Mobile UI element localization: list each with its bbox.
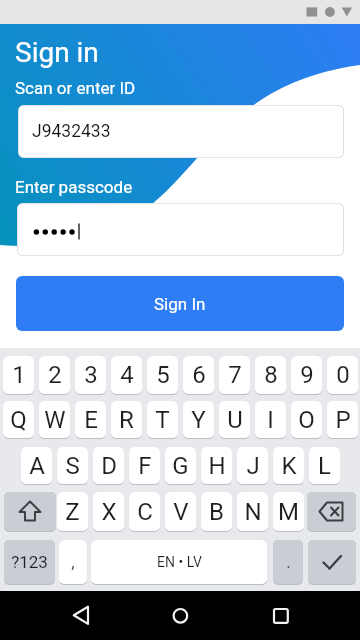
staticText: W (44, 406, 66, 434)
staticText: H (208, 452, 226, 480)
button[interactable]: M (273, 492, 304, 531)
button[interactable]: J9432433 (18, 105, 344, 158)
staticText: S (65, 452, 80, 480)
staticText: Y (191, 406, 206, 434)
staticText: P (335, 406, 351, 434)
button[interactable]: I (255, 401, 286, 438)
button[interactable]: Recents (251, 591, 311, 640)
staticText: I (267, 406, 274, 434)
staticText: C (137, 498, 153, 526)
button[interactable]: 7 (219, 356, 250, 394)
staticText: Enter passcode (15, 177, 133, 197)
button[interactable]: H (201, 447, 232, 484)
button[interactable]: Z (57, 492, 88, 531)
staticText: M (278, 498, 299, 526)
staticText: 2 (48, 361, 62, 389)
staticText: 1 (12, 361, 26, 389)
staticText: , (71, 552, 75, 572)
button[interactable]: Y (183, 401, 214, 438)
button[interactable]: 1 (3, 356, 34, 394)
button[interactable]: P (327, 401, 358, 438)
staticText: N (244, 498, 262, 526)
button[interactable]: G (165, 447, 196, 484)
button[interactable]: ?123 (4, 540, 55, 584)
staticText: F (138, 452, 152, 480)
button[interactable]: E (75, 401, 106, 438)
staticText: J9432433 (32, 121, 111, 142)
button[interactable]: 6 (183, 356, 214, 394)
button[interactable]: B (201, 492, 232, 531)
button[interactable]: 9 (291, 356, 322, 394)
staticText: 4 (120, 361, 134, 389)
staticText: 0 (336, 361, 350, 389)
staticText: Sign In (154, 294, 206, 314)
staticText: Scan or enter ID (15, 78, 136, 98)
staticText: D (101, 452, 117, 480)
staticText: 7 (228, 361, 242, 389)
staticText: 6 (192, 361, 206, 389)
staticText: R (119, 406, 134, 434)
button[interactable]: , (59, 540, 87, 584)
button[interactable]: K (273, 447, 304, 484)
button[interactable]: Home (150, 591, 210, 640)
button[interactable]: 5 (147, 356, 178, 394)
button[interactable]: J (237, 447, 268, 484)
staticText: Z (65, 498, 80, 526)
staticText: EN • LV (157, 554, 202, 570)
staticText: L (318, 452, 331, 480)
staticText: 5 (156, 361, 170, 389)
button[interactable]: 2 (39, 356, 70, 394)
button[interactable]: Back (60, 591, 120, 640)
staticText: O (298, 406, 315, 434)
button[interactable]: V (165, 492, 196, 531)
button[interactable]: 4 (111, 356, 142, 394)
button[interactable]: L (309, 447, 340, 484)
staticText: U (227, 406, 243, 434)
button[interactable]: T (147, 401, 178, 438)
button[interactable]: R (111, 401, 142, 438)
button[interactable]: W (39, 401, 70, 438)
button[interactable]: Sign In (16, 276, 344, 331)
staticText: A (29, 452, 45, 480)
button[interactable]: Q (3, 401, 34, 438)
button[interactable]: S (57, 447, 88, 484)
button[interactable] (17, 203, 344, 256)
button[interactable]: O (291, 401, 322, 438)
staticText: X (101, 498, 117, 526)
button[interactable]: D (93, 447, 124, 484)
staticText: Q (10, 406, 27, 434)
staticText: ?123 (11, 552, 48, 572)
staticText: 8 (264, 361, 278, 389)
staticText: V (173, 498, 189, 526)
button[interactable]: 8 (255, 356, 286, 394)
button[interactable]: X (93, 492, 124, 531)
staticText: G (172, 452, 189, 480)
button[interactable]: 3 (75, 356, 106, 394)
staticText: 9 (300, 361, 314, 389)
staticText: . (286, 552, 291, 572)
staticText: J (246, 452, 260, 480)
button[interactable]: Shift (4, 492, 56, 531)
button[interactable]: Enter (308, 540, 356, 584)
button[interactable]: F (129, 447, 160, 484)
staticText: Sign in (15, 36, 99, 69)
button[interactable]: Backspace (307, 492, 356, 531)
staticText: B (209, 498, 224, 526)
button[interactable]: C (129, 492, 160, 531)
button[interactable]: N (237, 492, 268, 531)
staticText: K (281, 452, 297, 480)
button[interactable]: EN • LV (91, 540, 267, 584)
button[interactable]: A (21, 447, 52, 484)
button[interactable]: 0 (327, 356, 358, 394)
button[interactable]: U (219, 401, 250, 438)
button[interactable]: . (273, 540, 303, 584)
staticText: E (84, 406, 98, 434)
staticText: 3 (84, 361, 98, 389)
staticText: T (155, 406, 170, 434)
